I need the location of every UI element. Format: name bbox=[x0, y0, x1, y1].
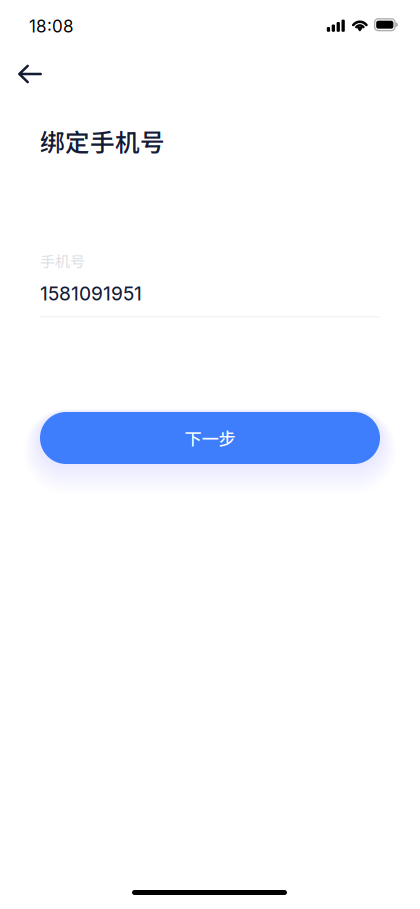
staticText: 绑定手机号 bbox=[40, 123, 165, 159]
staticText: 手机号 bbox=[40, 249, 85, 271]
staticText: 1581091951 bbox=[40, 282, 142, 305]
staticText: 下一步 bbox=[184, 425, 235, 450]
staticText: 18:08 bbox=[29, 16, 74, 37]
button[interactable]: Back bbox=[8, 52, 52, 96]
button[interactable]: 下一步 bbox=[40, 412, 380, 464]
